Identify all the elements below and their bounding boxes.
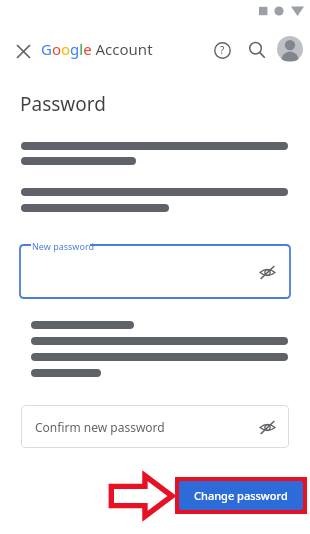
button[interactable]: New password [20, 238, 290, 299]
button[interactable]: Close [10, 38, 36, 64]
button[interactable]: Search [243, 36, 271, 64]
staticText: New password [32, 240, 94, 252]
button[interactable]: Confirm new password [21, 405, 289, 448]
staticText: Password [20, 91, 106, 117]
staticText: ? [220, 43, 225, 57]
staticText: Change password [194, 488, 288, 503]
button[interactable]: Show password [252, 257, 282, 287]
button[interactable]: Google Account [41, 39, 153, 59]
staticText: Confirm new password [35, 419, 165, 435]
button[interactable]: Show confirm password [253, 413, 281, 441]
staticText: Google Account [41, 39, 153, 59]
button[interactable]: Account [277, 36, 303, 62]
button[interactable]: Change password [179, 481, 303, 510]
button[interactable]: Help [208, 36, 236, 64]
